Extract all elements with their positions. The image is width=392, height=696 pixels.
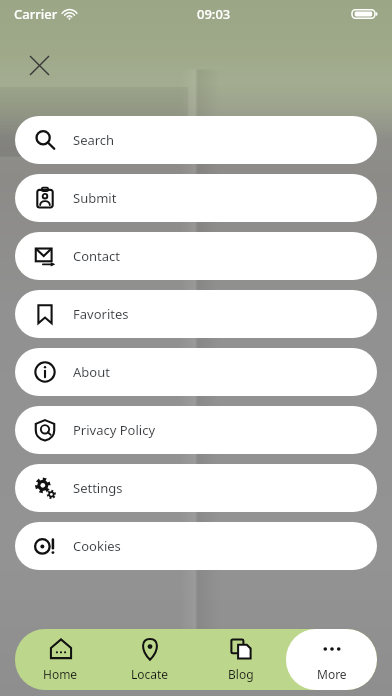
staticText: Carrier — [14, 5, 58, 23]
button[interactable]: Home — [15, 629, 105, 690]
staticText: Contact — [73, 247, 121, 265]
button[interactable]: Blog — [195, 629, 286, 690]
staticText: Favorites — [73, 305, 129, 323]
staticText: Locate — [131, 666, 169, 682]
button[interactable]: Search — [15, 116, 377, 164]
staticText: Blog — [228, 666, 254, 682]
button[interactable]: Settings — [15, 464, 377, 512]
staticText: Settings — [73, 479, 123, 497]
button[interactable]: About — [15, 348, 377, 396]
staticText: About — [73, 363, 110, 381]
staticText: 09:03 — [197, 5, 231, 23]
staticText: Cookies — [73, 537, 121, 555]
button[interactable]: More — [286, 629, 377, 690]
button[interactable]: Contact — [15, 232, 377, 280]
staticText: Submit — [73, 189, 117, 207]
staticText: Home — [43, 666, 78, 682]
staticText: More — [317, 666, 347, 682]
button[interactable]: Locate — [105, 629, 195, 690]
button[interactable]: Cookies — [15, 522, 377, 570]
button[interactable]: Submit — [15, 174, 377, 222]
button[interactable]: Privacy Policy — [15, 406, 377, 454]
staticText: Search — [73, 131, 115, 149]
button[interactable]: Close — [22, 48, 56, 82]
staticText: Privacy Policy — [73, 421, 156, 439]
button[interactable]: Favorites — [15, 290, 377, 338]
